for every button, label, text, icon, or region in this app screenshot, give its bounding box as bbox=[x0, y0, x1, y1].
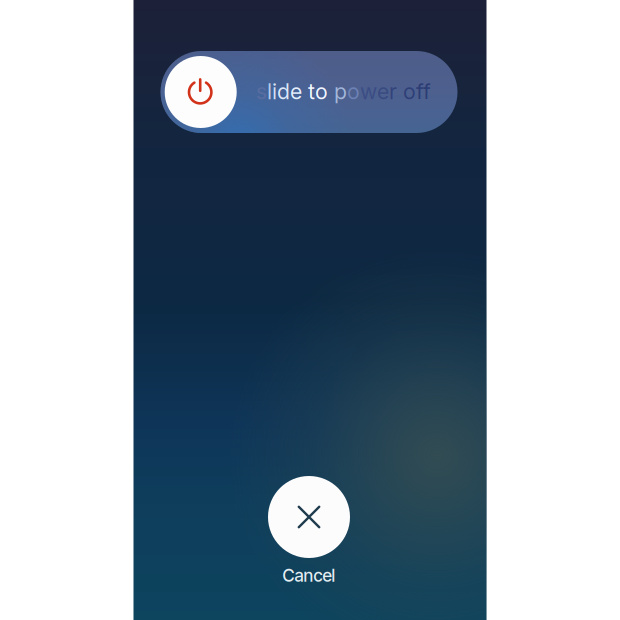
staticText: o bbox=[315, 79, 328, 104]
staticText: e bbox=[290, 79, 302, 104]
staticText: r bbox=[389, 79, 397, 104]
staticText: o bbox=[347, 79, 360, 104]
staticText: t bbox=[302, 79, 315, 104]
staticText: ff bbox=[416, 79, 431, 104]
staticText: w bbox=[360, 79, 377, 104]
staticText: p bbox=[334, 79, 347, 104]
staticText: Cancel bbox=[282, 565, 335, 586]
button[interactable]: Cancel bbox=[268, 476, 350, 558]
staticText: d bbox=[277, 79, 290, 104]
staticText: s bbox=[256, 79, 267, 104]
staticText: e bbox=[377, 79, 389, 104]
staticText: l bbox=[267, 79, 272, 104]
staticText: o bbox=[397, 79, 416, 104]
button[interactable]: s bbox=[160, 51, 457, 133]
staticText: i bbox=[272, 79, 277, 104]
